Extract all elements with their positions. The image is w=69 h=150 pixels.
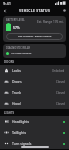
staticText: Headlights	[12, 119, 30, 124]
staticText: BATTERY LEVEL	[6, 18, 25, 22]
staticText: 57%	[13, 25, 20, 29]
staticText: DOORS	[4, 60, 15, 64]
staticText: 9:41	[3, 1, 11, 6]
staticText: Trunk	[12, 90, 22, 95]
staticText: Taillights	[12, 130, 27, 135]
button[interactable]: Turn signals	[0, 138, 69, 149]
staticText: Est. Range 176 mi.	[37, 20, 64, 24]
staticText: Closed	[56, 80, 65, 84]
staticText: Turn signals	[12, 141, 32, 146]
staticText: Hood	[12, 101, 21, 106]
staticText: Fast Charging · Battery Healthy	[18, 35, 52, 38]
button[interactable]: Back	[0, 6, 9, 15]
button[interactable]: Doors	[0, 76, 69, 87]
staticText: Unlocked	[52, 69, 65, 73]
button[interactable]: Trunk	[0, 87, 69, 98]
staticText: Locks	[12, 68, 21, 73]
staticText: DIAGNOSTIC RELAY	[6, 46, 31, 50]
button[interactable]: Locks	[0, 65, 69, 76]
staticText: Closed	[56, 91, 65, 95]
button[interactable]: Hood	[0, 98, 69, 109]
staticText: No Usage Warnings	[11, 52, 32, 55]
staticText: Closed	[56, 102, 65, 106]
staticText: LIGHTS	[4, 111, 15, 115]
button[interactable]: Headlights	[0, 116, 69, 127]
staticText: Doors	[12, 79, 22, 84]
staticText: VEHICLE STATUS	[19, 8, 51, 13]
button[interactable]: Taillights	[0, 127, 69, 138]
button[interactable]: Settings	[60, 6, 69, 15]
button[interactable]: Fast Charging · Battery Healthy	[6, 33, 63, 40]
